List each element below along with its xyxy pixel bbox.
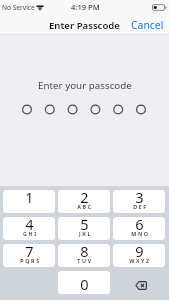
staticText: TUV — [77, 257, 93, 264]
staticText: 6 — [135, 217, 144, 234]
staticText: 3 — [135, 190, 144, 207]
staticText: Enter Passcode — [49, 19, 120, 32]
staticText: 8 — [80, 244, 89, 261]
button[interactable]: 4 — [3, 217, 55, 240]
staticText: 0 — [80, 274, 89, 294]
button[interactable]: 2 — [58, 190, 110, 213]
staticText: 7 — [25, 244, 34, 261]
staticText: 4:19 PM — [71, 2, 100, 12]
button[interactable]: 5 — [58, 217, 110, 240]
staticText: 9 — [135, 244, 144, 261]
staticText: 1 — [25, 190, 34, 207]
staticText: Enter your passcode — [38, 79, 132, 92]
staticText: 4 — [25, 217, 34, 234]
button[interactable]: 8 — [58, 244, 110, 267]
button[interactable]: 6 — [113, 217, 165, 240]
staticText: MNO — [131, 230, 150, 237]
button[interactable]: Delete — [113, 271, 165, 294]
button[interactable]: 3 — [113, 190, 165, 213]
staticText: JKL — [79, 230, 92, 237]
staticText: 2 — [80, 190, 89, 207]
button[interactable]: Cancel — [125, 14, 169, 34]
staticText: PQRS — [20, 257, 41, 264]
staticText: 5 — [80, 217, 89, 234]
staticText: No Service — [2, 3, 35, 12]
button[interactable]: 7 — [3, 244, 55, 267]
staticText: DEF — [133, 203, 148, 210]
staticText: WXYZ — [129, 257, 151, 264]
staticText: GHI — [23, 230, 38, 237]
staticText: Cancel — [131, 18, 164, 31]
button[interactable]: 1 — [3, 190, 55, 213]
button[interactable]: 0 — [58, 271, 110, 294]
button[interactable]: 9 — [113, 244, 165, 267]
staticText: ABC — [77, 203, 93, 210]
